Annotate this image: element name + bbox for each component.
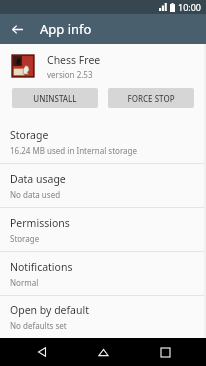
button[interactable]: Home [83,338,123,366]
button[interactable]: FORCE STOP [108,88,194,108]
button[interactable]: UNINSTALL [12,88,98,108]
button[interactable]: Back [22,338,62,366]
button[interactable]: Notifications [0,252,206,295]
staticText: 10:00 [178,1,202,13]
button[interactable]: Open by default [0,296,206,338]
staticText: UNINSTALL [33,93,77,104]
staticText: FORCE STOP [127,93,175,104]
button[interactable]: Storage [0,120,206,163]
staticText: Normal [10,277,39,288]
staticText: version 2.53 [47,69,93,80]
staticText: Chess Free [47,53,101,67]
button[interactable]: Data usage [0,164,206,207]
staticText: No defaults set [10,320,67,331]
staticText: App info [40,20,92,38]
button[interactable]: Back [6,18,28,40]
staticText: Open by default [10,303,90,317]
staticText: Storage [10,128,49,142]
button[interactable]: Permissions [0,208,206,251]
staticText: 16.24 MB used in Internal storage [10,145,137,156]
staticText: Storage [10,233,40,244]
staticText: No data used [10,189,61,200]
button[interactable]: Recent apps [145,338,185,366]
staticText: Permissions [10,216,70,230]
staticText: Data usage [10,172,66,186]
staticText: Notifications [10,260,73,274]
